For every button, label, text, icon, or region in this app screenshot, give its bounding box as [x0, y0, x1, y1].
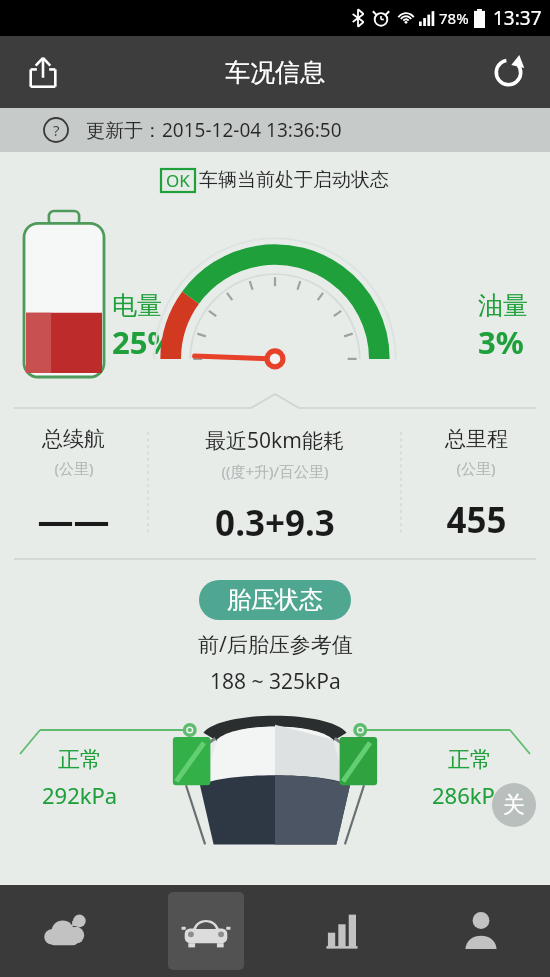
button[interactable]: Profile	[412, 885, 550, 977]
staticText: 25%	[112, 321, 176, 363]
staticText: 78%	[439, 8, 469, 28]
staticText: 455	[446, 496, 507, 544]
staticText: ((度+升)/百公里)	[221, 461, 329, 481]
staticText: 13:37	[493, 5, 542, 31]
staticText: 292kPa	[42, 780, 118, 810]
staticText: 3%	[478, 321, 524, 363]
staticText: 0.3+9.3	[215, 499, 335, 547]
staticText: 正常	[58, 746, 102, 774]
staticText: 前/后胎压参考值	[198, 630, 353, 659]
staticText: 胎压状态	[227, 585, 323, 615]
button[interactable]: Weather	[0, 885, 137, 977]
staticText: 最近50km能耗	[205, 426, 344, 455]
staticText: 总续航	[42, 426, 105, 452]
staticText: OK	[166, 169, 190, 192]
button[interactable]: Refresh	[484, 48, 532, 96]
button[interactable]: Share	[20, 49, 66, 95]
button[interactable]: Close	[492, 783, 536, 827]
staticText: 总里程	[445, 426, 508, 452]
staticText: 油量	[478, 290, 528, 321]
staticText: (公里)	[456, 458, 496, 478]
staticText: (公里)	[54, 458, 94, 478]
staticText: 正常	[448, 746, 492, 774]
button[interactable]: Vehicle	[137, 885, 274, 977]
staticText: 电量	[112, 290, 162, 321]
staticText: 188 ~ 325kPa	[210, 667, 341, 696]
staticText: 车辆当前处于启动状态	[199, 168, 389, 192]
staticText: ?	[53, 120, 60, 140]
staticText: 关	[503, 791, 525, 819]
staticText: 车况信息	[225, 57, 325, 88]
button[interactable]: Help	[42, 116, 70, 144]
staticText: 286kPa	[432, 780, 508, 810]
staticText: ——	[37, 496, 110, 545]
staticText: 更新于：2015-12-04 13:36:50	[86, 117, 342, 143]
button[interactable]: Statistics	[274, 885, 412, 977]
button[interactable]: 胎压状态	[199, 580, 351, 620]
